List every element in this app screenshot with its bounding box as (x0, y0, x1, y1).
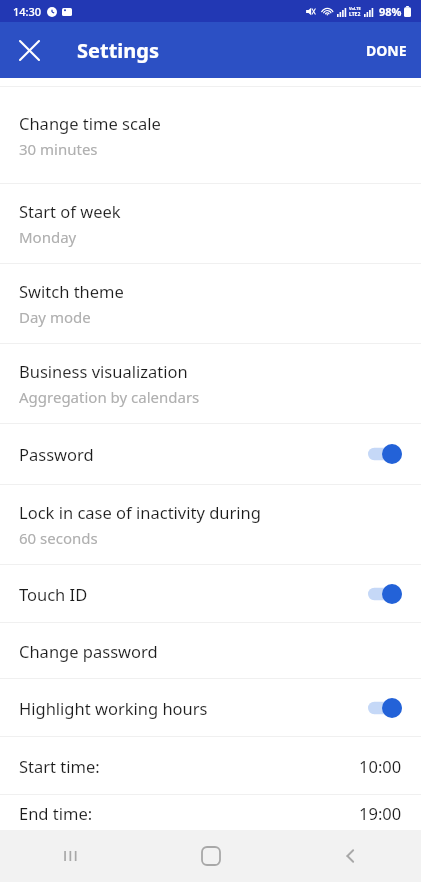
button[interactable]: End time: (0, 795, 421, 830)
staticText: 98% (379, 4, 402, 19)
staticText: Password (19, 443, 94, 465)
staticText: Change time scale (19, 112, 161, 134)
button[interactable]: Change password (0, 623, 421, 678)
button[interactable]: Password (0, 424, 421, 484)
staticText: Settings (77, 37, 159, 64)
staticText: Day mode (19, 307, 91, 327)
other: Toggle (368, 698, 402, 718)
staticText: 10:00 (359, 755, 402, 777)
staticText: DONE (366, 41, 407, 60)
staticText: 14:30 (13, 4, 42, 19)
button[interactable]: Back (281, 830, 421, 882)
button[interactable]: Start time: (0, 737, 421, 794)
button[interactable]: Close (10, 31, 48, 69)
staticText: Change password (19, 640, 158, 662)
staticText: Monday (19, 227, 77, 247)
staticText: Aggregation by calendars (19, 387, 200, 407)
staticText: Business visualization (19, 360, 188, 382)
button[interactable]: Change time scale (0, 87, 421, 183)
other: Toggle (368, 444, 402, 464)
button[interactable]: Start of week (0, 184, 421, 263)
button[interactable]: Highlight working hours (0, 679, 421, 736)
staticText: 30 minutes (19, 139, 98, 159)
staticText: Touch ID (19, 583, 88, 605)
button[interactable]: Switch theme (0, 264, 421, 343)
staticText: Switch theme (19, 280, 124, 302)
staticText: 60 seconds (19, 528, 98, 548)
staticText: LTE2 (349, 11, 361, 18)
button[interactable]: Home (141, 830, 281, 882)
staticText: Start of week (19, 200, 121, 222)
button[interactable]: Lock in case of inactivity during (0, 485, 421, 564)
staticText: End time: (19, 802, 93, 824)
button[interactable]: Touch ID (0, 565, 421, 622)
staticText: Lock in case of inactivity during (19, 501, 261, 523)
staticText: Start time: (19, 755, 100, 777)
staticText: Highlight working hours (19, 697, 208, 719)
other: Toggle (368, 584, 402, 604)
staticText: VoLTE (349, 6, 361, 11)
button[interactable]: Business visualization (0, 344, 421, 423)
staticText: 19:00 (359, 802, 402, 824)
button[interactable]: Recents (0, 830, 141, 882)
button[interactable]: DONE (352, 31, 421, 70)
